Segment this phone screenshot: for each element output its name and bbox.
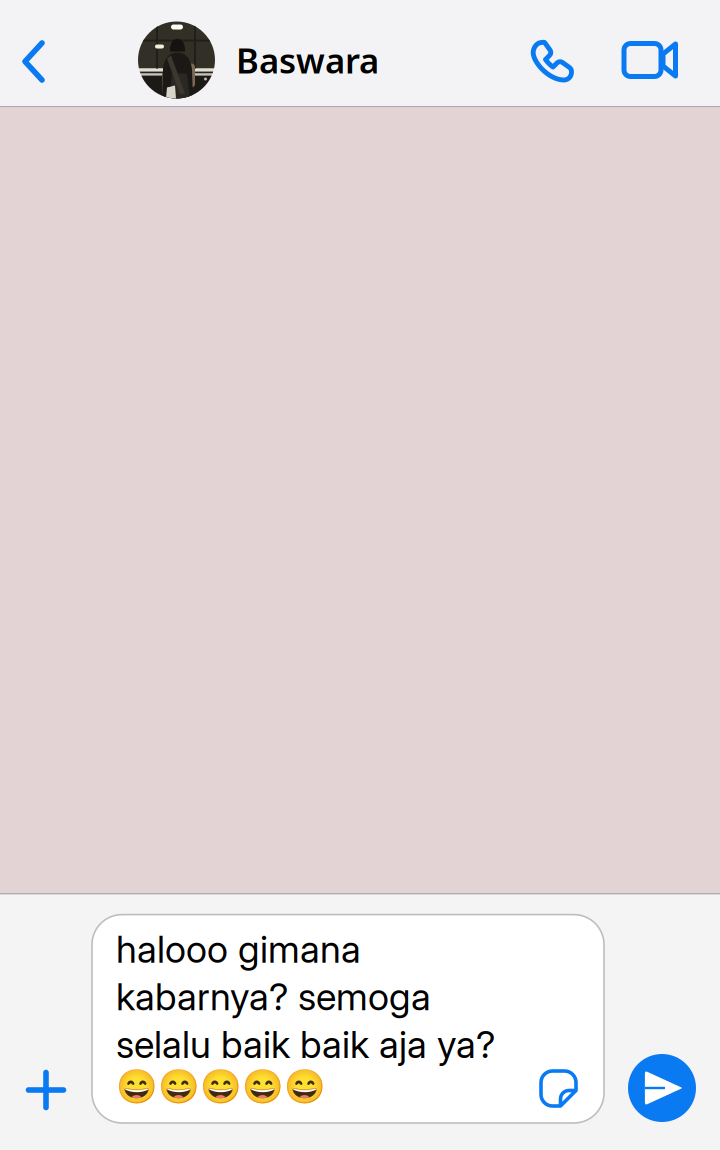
button[interactable]: Attach: [0, 1047, 92, 1123]
staticText: halooo gimana kabarnya? semoga selalu ba…: [116, 927, 495, 1067]
button[interactable]: Voice call: [509, 18, 595, 104]
button[interactable]: Send: [604, 1047, 720, 1123]
button[interactable]: Baswara: [138, 15, 468, 105]
staticText: 😄😄😄😄😄: [116, 1067, 326, 1106]
staticText: Baswara: [236, 36, 379, 84]
button[interactable]: Back: [0, 16, 66, 106]
button[interactable]: Stickers: [539, 1069, 604, 1123]
button[interactable]: Video call: [607, 17, 693, 103]
